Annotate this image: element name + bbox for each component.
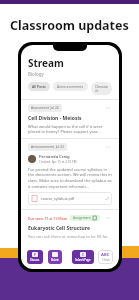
staticText: Eukaryotic Cell Structure	[28, 225, 90, 232]
staticText: Assignment	[73, 216, 91, 220]
button[interactable]: Announcements	[53, 82, 88, 91]
staticText: course_syllabus.pdf	[41, 196, 75, 201]
button[interactable]: Rubric	[48, 250, 62, 264]
staticText: Submit Page	[75, 258, 91, 262]
staticText: Biology	[28, 71, 44, 77]
button[interactable]: Classwork	[91, 82, 112, 95]
staticText: C	[82, 252, 85, 257]
staticText: Due soon: 15 at 11:59am	[28, 216, 67, 220]
staticText: Discuss	[30, 258, 40, 262]
staticText: +1	[105, 196, 109, 201]
staticText: Fernanda Craig	[39, 154, 70, 160]
staticText: You can ask them at mtaschap to be 50 fo…	[28, 234, 108, 239]
staticText: ABC	[101, 252, 110, 258]
staticText: Created: Apr 15 at 2:03 PM	[39, 160, 77, 164]
button[interactable]: All Posts	[28, 82, 50, 91]
button[interactable]: More options	[104, 143, 112, 151]
button[interactable]: Discuss	[27, 250, 43, 264]
button[interactable]: ABC	[98, 250, 113, 264]
staticText: Rubric	[51, 258, 59, 262]
staticText: Assessment Jul 24	[31, 106, 59, 110]
staticText: P	[34, 252, 37, 257]
button[interactable]: More options	[104, 214, 112, 222]
staticText: I've posted the updated course syllabus …	[28, 167, 112, 189]
staticText: Check	[102, 258, 110, 262]
staticText: What would happen to the cell if it were…	[28, 124, 112, 134]
staticText: All Posts	[32, 84, 46, 89]
button[interactable]: course_syllabus.pdf	[28, 192, 112, 205]
staticText: Announcement Jul 23	[31, 145, 64, 149]
staticText: Cell Division - Meiosis	[28, 115, 82, 122]
button[interactable]: Submit Page	[72, 250, 94, 264]
staticText: Stream	[28, 56, 64, 70]
staticText: Announcements	[57, 84, 84, 89]
staticText: Classwork	[95, 84, 108, 93]
button[interactable]: More options	[104, 104, 112, 112]
staticText: Classroom updates	[10, 17, 129, 34]
